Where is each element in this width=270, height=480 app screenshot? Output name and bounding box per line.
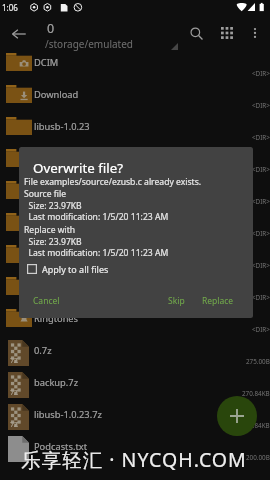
button[interactable]: Replace bbox=[199, 292, 237, 310]
staticText: <DIR> bbox=[252, 293, 270, 302]
staticText: /storage/emulated bbox=[45, 37, 133, 51]
staticText: Apply to all files bbox=[42, 263, 109, 275]
staticText: 0 bbox=[47, 20, 55, 37]
staticText: 1:06 bbox=[2, 2, 18, 13]
staticText: 270.84KB bbox=[242, 389, 270, 398]
staticText: 7Z bbox=[10, 420, 19, 430]
staticText: Size: 23.97KB bbox=[24, 200, 82, 212]
button[interactable]: Download bbox=[0, 84, 270, 116]
button[interactable]: Pictures bbox=[0, 244, 270, 276]
staticText: Replace bbox=[202, 295, 234, 307]
staticText: <DIR> bbox=[252, 197, 270, 206]
staticText: <DIR> bbox=[252, 101, 270, 110]
button[interactable]: Back bbox=[4, 19, 33, 48]
button[interactable]: Search bbox=[182, 19, 210, 47]
button[interactable]: More options bbox=[241, 19, 269, 47]
button[interactable]: 7Z bbox=[0, 372, 270, 404]
staticText: <DIR> bbox=[252, 261, 270, 270]
button[interactable]: Skip bbox=[165, 292, 188, 310]
staticText: 乐享轻汇 · NYCQH.COM bbox=[21, 446, 247, 473]
staticText: libusb-1.0.23.7z bbox=[34, 408, 102, 421]
staticText: Source file bbox=[24, 188, 67, 200]
staticText: libusb-1.0.23 bbox=[34, 120, 90, 133]
staticText: Replace with bbox=[24, 224, 76, 236]
button[interactable]: 7Z bbox=[0, 340, 270, 372]
staticText: 0.7z bbox=[34, 344, 52, 357]
button[interactable]: 7Z bbox=[0, 404, 270, 436]
staticText: <DIR> bbox=[252, 325, 270, 334]
button[interactable]: Notifications bbox=[0, 212, 270, 244]
staticText: 270.84KB bbox=[242, 421, 270, 430]
button[interactable]: Movies bbox=[0, 148, 270, 180]
staticText: Skip bbox=[168, 295, 185, 307]
staticText: Movies bbox=[34, 152, 65, 165]
staticText: Download bbox=[34, 88, 79, 101]
staticText: Last modification: 1/5/20 11:23 AM bbox=[24, 211, 169, 223]
button[interactable]: Music bbox=[0, 180, 270, 212]
button[interactable]: libusb-1.0.23 bbox=[0, 116, 270, 148]
button[interactable]: Add bbox=[217, 396, 257, 436]
staticText: Pictures bbox=[34, 248, 69, 261]
staticText: 7Z bbox=[10, 356, 19, 366]
staticText: Music bbox=[34, 184, 60, 197]
staticText: Podcasts.txt bbox=[34, 440, 88, 453]
staticText: backup.7z bbox=[34, 376, 79, 389]
button[interactable]: Podcasts.txt bbox=[0, 436, 270, 468]
staticText: Notifications bbox=[34, 216, 90, 229]
staticText: File examples/source/ezusb.c already exi… bbox=[24, 176, 202, 188]
staticText: <DIR> bbox=[252, 69, 270, 78]
staticText: DCIM bbox=[34, 56, 59, 69]
staticText: Size: 23.97KB bbox=[24, 236, 82, 248]
staticText: <DIR> bbox=[252, 165, 270, 174]
staticText: Ringtones bbox=[34, 312, 79, 325]
button[interactable]: DCIM bbox=[0, 52, 270, 84]
button[interactable]: Ringtones bbox=[0, 308, 270, 340]
button[interactable]: Apply to all files bbox=[24, 260, 112, 278]
button[interactable]: Cancel bbox=[30, 292, 63, 310]
button[interactable]: Podcasts bbox=[0, 276, 270, 308]
staticText: <DIR> bbox=[252, 229, 270, 238]
staticText: Cancel bbox=[33, 295, 60, 307]
staticText: 200.00B bbox=[246, 453, 270, 462]
staticText: Last modification: 1/5/20 11:23 AM bbox=[24, 247, 169, 259]
staticText: 7Z bbox=[10, 388, 19, 398]
staticText: Overwrite file? bbox=[33, 159, 123, 177]
button[interactable]: Grid view bbox=[213, 19, 241, 47]
staticText: 275.00B bbox=[246, 357, 270, 366]
staticText: <DIR> bbox=[252, 133, 270, 142]
